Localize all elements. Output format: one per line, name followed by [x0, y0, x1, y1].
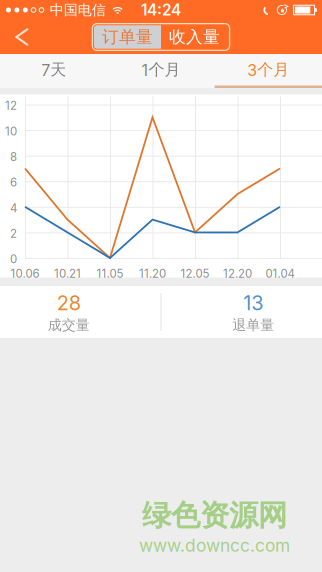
- staticText: 8: [10, 150, 17, 164]
- staticText: 12.20: [223, 267, 252, 280]
- staticText: 2: [10, 227, 17, 241]
- staticText: 成交量: [48, 316, 90, 334]
- staticText: 12.05: [180, 267, 209, 280]
- staticText: 10.21: [54, 267, 81, 280]
- staticText: 11.05: [96, 267, 123, 280]
- staticText: 14:24: [141, 1, 181, 19]
- staticText: 绿色资源网: [142, 497, 287, 534]
- staticText: 退单量: [232, 316, 274, 334]
- staticText: 收入量: [169, 26, 220, 47]
- staticText: 12: [5, 99, 17, 113]
- staticText: 10.06: [10, 267, 39, 280]
- button[interactable]: 3个月: [215, 54, 322, 88]
- staticText: 中国电信: [50, 1, 106, 19]
- staticText: 1个月: [141, 60, 180, 80]
- staticText: 11.20: [139, 267, 166, 280]
- button[interactable]: 订单量: [94, 25, 161, 49]
- staticText: 01.04: [265, 267, 294, 280]
- button[interactable]: Back: [0, 20, 45, 54]
- button[interactable]: 收入量: [161, 25, 228, 49]
- staticText: 4: [10, 201, 17, 215]
- button[interactable]: 1个月: [107, 54, 215, 88]
- staticText: 0: [10, 252, 17, 266]
- staticText: 13: [243, 291, 263, 315]
- staticText: 3个月: [247, 60, 289, 80]
- staticText: www.downcc.com: [139, 535, 290, 556]
- staticText: 6: [10, 175, 17, 189]
- staticText: 订单量: [102, 26, 153, 47]
- staticText: 7天: [41, 60, 66, 80]
- staticText: 28: [57, 291, 81, 315]
- button[interactable]: 7天: [0, 54, 107, 88]
- staticText: 10: [5, 124, 17, 138]
